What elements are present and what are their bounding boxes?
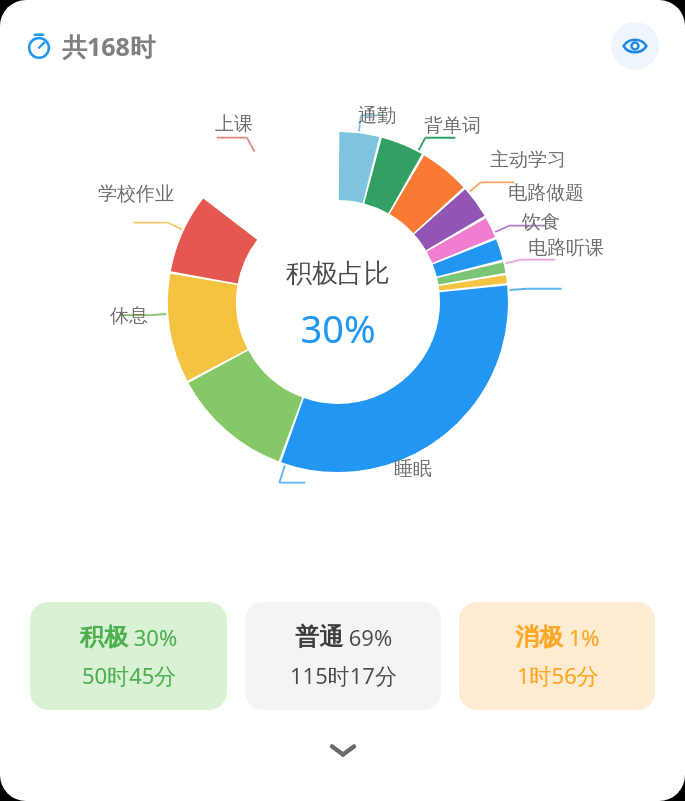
staticText: 消极 — [515, 622, 563, 652]
staticText: 通勤 — [358, 104, 396, 128]
staticText: 上课 — [215, 112, 253, 136]
staticText: 共168时 — [62, 29, 155, 63]
staticText: 1% — [563, 622, 600, 652]
staticText: 普通 — [295, 622, 343, 652]
staticText: 饮食 — [522, 210, 560, 234]
staticText: 电路听课 — [528, 236, 604, 260]
staticText: 积极 — [80, 622, 128, 652]
button[interactable]: 共168时 — [22, 25, 159, 67]
button[interactable]: Toggle visibility — [611, 22, 659, 70]
staticText: 电路做题 — [508, 181, 584, 205]
staticText: 30% — [128, 622, 178, 652]
staticText: 休息 — [110, 304, 148, 328]
staticText: 69% — [343, 622, 393, 652]
staticText: 1时56分 — [517, 660, 599, 690]
staticText: 30% — [300, 302, 376, 354]
staticText: 积极占比 — [286, 257, 390, 290]
button[interactable]: Expand — [321, 728, 365, 772]
staticText: 主动学习 — [490, 148, 566, 172]
button[interactable]: 积极 — [30, 602, 227, 710]
staticText: 学校作业 — [98, 182, 174, 206]
staticText: 背单词 — [424, 114, 481, 138]
staticText: 50时45分 — [82, 660, 177, 690]
staticText: 睡眠 — [394, 457, 432, 481]
button[interactable]: 普通 — [245, 602, 441, 710]
button[interactable]: 消极 — [459, 602, 655, 710]
staticText: 115时17分 — [290, 660, 397, 690]
